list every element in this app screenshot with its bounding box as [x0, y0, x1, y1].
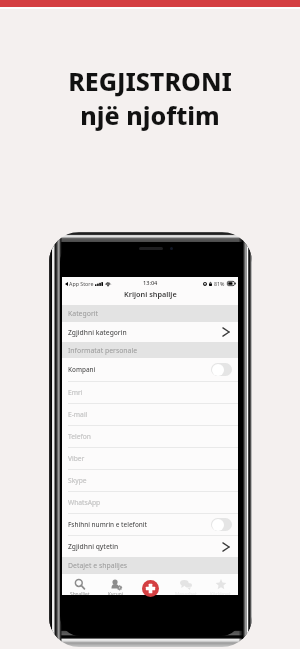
staticText: Fshihni numrin e telefonit	[68, 520, 147, 529]
staticText: Krijoni shpallje	[124, 289, 177, 299]
staticText: Zgjidhni kategorin	[68, 328, 127, 337]
staticText: Kompani	[68, 365, 96, 374]
staticText: Mesazhet	[175, 591, 197, 595]
staticText: Telefon	[68, 432, 91, 441]
staticText: E-mail	[68, 410, 88, 419]
staticText: Informatat personale	[68, 346, 138, 355]
staticText: Skype	[68, 476, 87, 485]
button[interactable]: Krijoni shpallje	[62, 289, 238, 305]
button[interactable]: Kërkimet	[203, 573, 238, 595]
button[interactable]: Shpalljet	[62, 573, 98, 595]
staticText: REGJISTRONI	[68, 64, 232, 98]
staticText: Zgjidhni qytetin	[68, 542, 119, 551]
button[interactable]: Zgjidhni qytetin	[62, 536, 238, 557]
staticText: Shpalljet	[70, 591, 90, 595]
button[interactable]: Skype	[62, 470, 238, 491]
button[interactable]: E-mail	[62, 404, 238, 425]
staticText: Kategorit	[68, 309, 99, 318]
button[interactable]: Viber	[62, 448, 238, 469]
staticText: një njoftim	[80, 98, 220, 132]
button[interactable]: Telefon	[62, 426, 238, 447]
button[interactable]: Fshihni numrin e telefonit	[62, 514, 238, 535]
staticText: App Store	[69, 280, 94, 287]
staticText: Viber	[68, 454, 85, 463]
button[interactable]: Zgjidhni kategorin	[62, 322, 238, 342]
button[interactable]: Mesazhet	[168, 573, 203, 595]
staticText: Detajet e shpalljes	[68, 561, 128, 570]
button[interactable]: Emri	[62, 382, 238, 403]
button[interactable]: WhatsApp	[62, 492, 238, 513]
staticText: Kyçuni	[108, 591, 123, 595]
staticText: 81%	[214, 280, 225, 287]
staticText: 13:04	[143, 279, 158, 287]
button[interactable]: Create listing	[142, 580, 159, 597]
staticText: WhatsApp	[68, 498, 101, 507]
button[interactable]: Kompani	[62, 358, 238, 381]
staticText: Emri	[68, 388, 83, 397]
staticText: Kërkimet	[210, 591, 231, 595]
button[interactable]: Kyçuni	[98, 573, 133, 595]
